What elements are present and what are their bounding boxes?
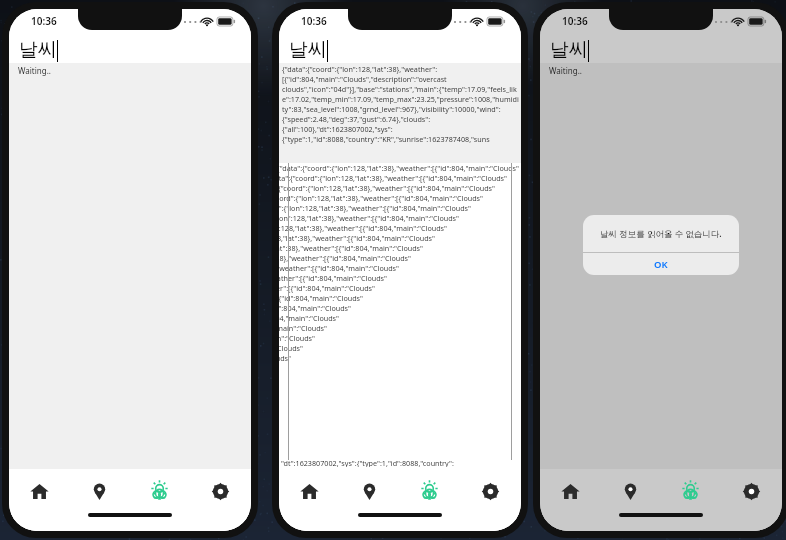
button[interactable]: Home [279,469,339,513]
button[interactable]: OK [583,253,739,275]
staticText: {"data":{"coord":{"lon":128,"lat":38},"w… [279,303,351,313]
button[interactable]: Settings [460,469,521,513]
button[interactable]: Home [540,469,600,513]
staticText: {"data":{"coord":{"lon":128,"lat":38},"w… [279,173,507,183]
staticText: {"data":{"coord":{"lon":128,"lat":38},"w… [282,64,520,144]
staticText: {"data":{"coord":{"lon":128,"lat":38},"w… [279,253,411,263]
staticText: {"data":{"coord":{"lon":128,"lat":38},"w… [279,293,363,303]
staticText: 10:36 [31,14,57,28]
staticText: {"data":{"coord":{"lon":128,"lat":38},"w… [279,213,459,223]
staticText: {"data":{"coord":{"lon":128,"lat":38},"w… [279,353,291,363]
staticText: {"data":{"coord":{"lon":128,"lat":38},"w… [279,333,315,343]
button[interactable]: Weather [660,469,721,513]
staticText: {"data":{"coord":{"lon":128,"lat":38},"w… [279,203,471,213]
staticText: {"data":{"coord":{"lon":128,"lat":38},"w… [279,263,399,273]
staticText: {"data":{"coord":{"lon":128,"lat":38},"w… [279,313,339,323]
staticText: {"data":{"coord":{"lon":128,"lat":38},"w… [279,233,435,243]
staticText: 날씨 [550,38,588,62]
staticText: 날씨 정보를 읽어올 수 없습니다. [600,228,722,240]
staticText: OK [654,258,668,271]
button[interactable]: Weather [129,469,190,513]
button[interactable]: Home [9,469,69,513]
staticText: 날씨 [19,38,57,62]
staticText: Waiting.. [549,65,582,76]
staticText: {"data":{"coord":{"lon":128,"lat":38},"w… [279,343,303,353]
button[interactable]: Weather [399,469,460,513]
staticText: 날씨 [289,38,327,62]
staticText: Waiting.. [18,65,51,76]
button[interactable]: Settings [190,469,251,513]
staticText: {"data":{"coord":{"lon":128,"lat":38},"w… [279,223,447,233]
staticText: {"data":{"coord":{"lon":128,"lat":38},"w… [279,323,327,333]
button[interactable]: Location [600,469,660,513]
staticText: "dt":1623807002,"sys":{"type":1,"id":808… [281,458,454,467]
button[interactable]: Location [339,469,399,513]
staticText: 10:36 [562,14,588,28]
staticText: {"data":{"coord":{"lon":128,"lat":38},"w… [279,243,423,253]
button[interactable]: Location [69,469,129,513]
staticText: {"data":{"coord":{"lon":128,"lat":38},"w… [279,283,375,293]
staticText: {"data":{"coord":{"lon":128,"lat":38},"w… [279,273,387,283]
staticText: 10:36 [301,14,327,28]
staticText: {"data":{"coord":{"lon":128,"lat":38},"w… [279,163,519,173]
staticText: {"data":{"coord":{"lon":128,"lat":38},"w… [279,193,483,203]
staticText: {"data":{"coord":{"lon":128,"lat":38},"w… [279,183,495,193]
button[interactable]: Settings [721,469,782,513]
